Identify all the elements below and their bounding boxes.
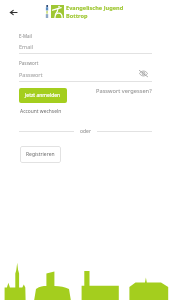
staticText: Email — [19, 43, 34, 50]
staticText: Registrieren — [26, 151, 55, 158]
button[interactable]: Jetzt anmelden — [19, 88, 67, 103]
button[interactable]: Passwort vergessen? — [96, 87, 152, 95]
staticText: Bottrop — [66, 12, 88, 20]
staticText: Jetzt anmelden — [25, 92, 61, 99]
button[interactable]: Account wechseln — [20, 108, 62, 115]
staticText: Passwort vergessen? — [96, 87, 152, 95]
staticText: Passwort — [19, 71, 143, 78]
staticText: Account wechseln — [20, 108, 62, 115]
button[interactable]: Zurück — [3, 2, 21, 20]
staticText: oder — [80, 128, 91, 135]
staticText: Evangelische Jugend — [66, 4, 124, 12]
button[interactable]: Passwort anzeigen — [139, 69, 148, 78]
button[interactable]: Registrieren — [20, 146, 61, 163]
staticText: E-Mail — [19, 33, 32, 39]
staticText: Passwort — [19, 60, 39, 66]
